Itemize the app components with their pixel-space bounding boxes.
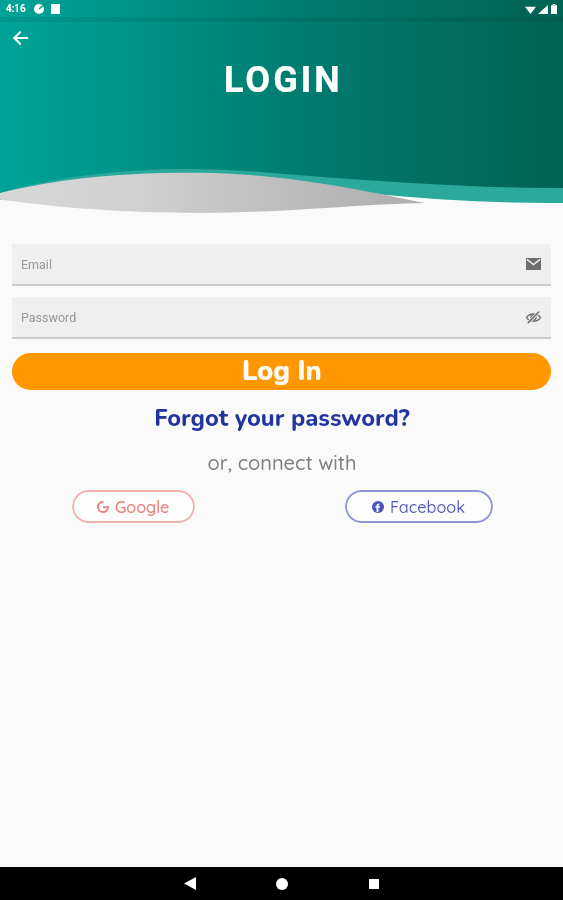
staticText: LOGIN — [224, 59, 343, 101]
staticText: Password — [21, 310, 77, 325]
button[interactable]: Back — [167, 867, 213, 900]
button[interactable]: Password — [12, 297, 551, 339]
button[interactable]: Google — [72, 490, 195, 523]
button[interactable]: Log In — [12, 353, 551, 390]
staticText: Forgot your password? — [154, 402, 410, 434]
staticText: Log In — [242, 353, 322, 390]
button[interactable]: Email — [12, 244, 551, 286]
button[interactable]: Home — [259, 867, 305, 900]
button[interactable]: Recents — [351, 867, 397, 900]
staticText: Email — [21, 257, 52, 272]
button[interactable]: Forgot your password? — [0, 402, 563, 434]
staticText: or, connect with — [207, 450, 357, 475]
button[interactable]: Facebook — [345, 490, 493, 523]
staticText: Google — [115, 497, 170, 517]
button[interactable]: Back — [5, 23, 35, 53]
staticText: Facebook — [390, 497, 466, 517]
staticText: 4:16 — [6, 3, 26, 15]
